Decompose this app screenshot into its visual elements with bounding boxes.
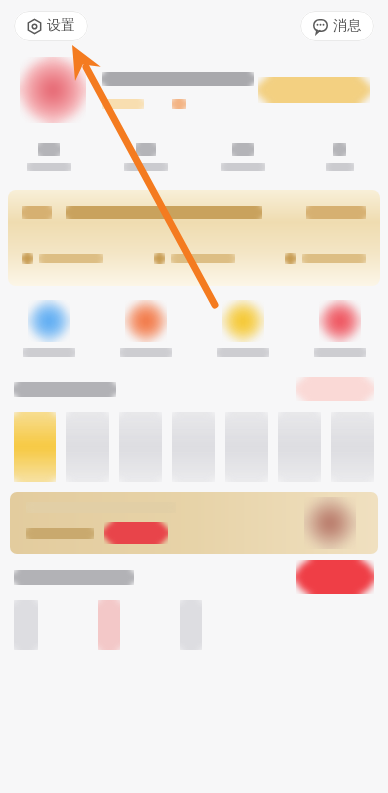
button[interactable]	[0, 128, 97, 186]
button[interactable]	[194, 128, 291, 186]
button[interactable]: 消息	[300, 11, 374, 41]
button[interactable]	[154, 253, 235, 264]
button[interactable]: 设置	[14, 11, 88, 41]
button[interactable]	[8, 190, 380, 286]
button[interactable]: Quick action	[291, 286, 388, 370]
button[interactable]	[22, 253, 103, 264]
staticText: 消息	[333, 17, 361, 35]
button[interactable]: Quick action	[97, 286, 194, 370]
button[interactable]: Quick action	[194, 286, 291, 370]
button[interactable]	[296, 377, 374, 401]
staticText: 设置	[47, 17, 75, 35]
button[interactable]	[104, 522, 168, 544]
button[interactable]	[291, 128, 388, 186]
button[interactable]: Quick action	[0, 286, 97, 370]
button[interactable]	[285, 253, 366, 264]
button[interactable]	[0, 52, 388, 128]
button[interactable]	[10, 492, 378, 554]
button[interactable]	[97, 128, 194, 186]
button[interactable]	[296, 560, 374, 594]
